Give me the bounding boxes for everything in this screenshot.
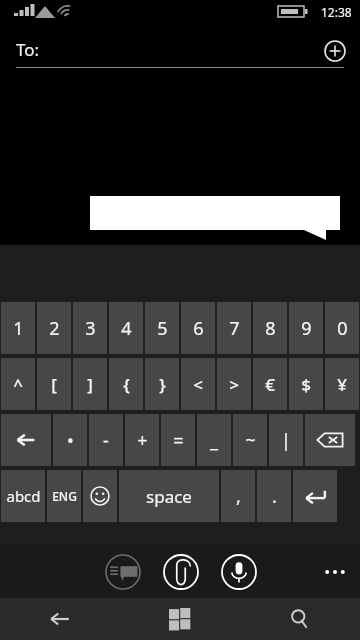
button[interactable]: More options <box>320 557 350 587</box>
button[interactable]: 8 <box>253 302 287 354</box>
staticText: 3 <box>85 316 96 341</box>
staticText: < <box>193 373 203 396</box>
button[interactable]: Emoji <box>83 470 117 522</box>
staticText: 0 <box>337 316 348 341</box>
staticText: , <box>236 484 241 509</box>
staticText: ENG <box>52 488 77 504</box>
button[interactable]: 1 <box>1 302 35 354</box>
staticText: } <box>159 373 166 396</box>
button[interactable]: ¥ <box>325 358 359 410</box>
staticText: 1 <box>13 316 24 341</box>
button[interactable]: Add recipient <box>324 40 346 62</box>
staticText: { <box>123 373 130 396</box>
button[interactable]: Send <box>104 553 142 591</box>
button[interactable]: 3 <box>73 302 107 354</box>
button[interactable]: . <box>257 470 291 522</box>
button[interactable]: Attach <box>162 553 200 591</box>
button[interactable]: ] <box>73 358 107 410</box>
staticText: 8 <box>265 316 276 341</box>
button[interactable]: _ <box>197 414 231 466</box>
staticText: _ <box>210 428 218 453</box>
staticText: 9 <box>301 316 312 341</box>
staticText: To: <box>16 38 40 61</box>
staticText: . <box>272 484 277 509</box>
button[interactable]: < <box>181 358 215 410</box>
staticText: = <box>173 428 184 453</box>
button[interactable]: } <box>145 358 179 410</box>
button[interactable]: 6 <box>181 302 215 354</box>
button[interactable]: ENG <box>47 470 81 522</box>
staticText: [ <box>51 373 57 396</box>
staticText: 2 <box>49 316 60 341</box>
staticText: 5 <box>157 316 168 341</box>
button[interactable]: Search <box>240 598 360 640</box>
staticText: ] <box>87 373 93 396</box>
staticText: 7 <box>229 316 240 341</box>
button[interactable]: 7 <box>217 302 251 354</box>
button[interactable]: • <box>53 414 87 466</box>
button[interactable]: 5 <box>145 302 179 354</box>
staticText: - <box>103 428 109 453</box>
button[interactable]: { <box>109 358 143 410</box>
button[interactable]: > <box>217 358 251 410</box>
staticText: > <box>229 373 239 396</box>
button[interactable]: 2 <box>37 302 71 354</box>
staticText: 12:38 <box>321 4 352 20</box>
staticText: • <box>67 428 74 453</box>
staticText: 4 <box>121 316 132 341</box>
staticText: + <box>137 428 148 453</box>
button[interactable]: Backspace <box>305 414 355 466</box>
button[interactable]: space <box>119 470 219 522</box>
button[interactable]: , <box>221 470 255 522</box>
button[interactable]: Enter <box>293 470 337 522</box>
staticText: ¥ <box>337 373 347 396</box>
button[interactable]: ~ <box>233 414 267 466</box>
button[interactable]: 9 <box>289 302 323 354</box>
button[interactable]: = <box>161 414 195 466</box>
button[interactable]: | <box>269 414 303 466</box>
staticText: $ <box>301 373 311 396</box>
staticText: space <box>146 485 192 508</box>
staticText: ~ <box>245 428 256 453</box>
staticText: | <box>281 428 291 453</box>
staticText: abcd <box>6 486 41 506</box>
button[interactable]: - <box>89 414 123 466</box>
button[interactable]: 4 <box>109 302 143 354</box>
button[interactable]: $ <box>289 358 323 410</box>
staticText: 6 <box>193 316 204 341</box>
staticText: € <box>265 373 275 396</box>
button[interactable]: [ <box>37 358 71 410</box>
button[interactable]: ^ <box>1 358 35 410</box>
button[interactable]: € <box>253 358 287 410</box>
button[interactable]: abcd <box>1 470 45 522</box>
button[interactable]: + <box>125 414 159 466</box>
button[interactable]: Previous page <box>1 414 51 466</box>
button[interactable]: Voice input <box>220 553 258 591</box>
button[interactable]: Back <box>0 598 120 640</box>
button[interactable]: 0 <box>325 302 359 354</box>
button[interactable]: Start <box>120 598 240 640</box>
staticText: ^ <box>13 373 23 396</box>
